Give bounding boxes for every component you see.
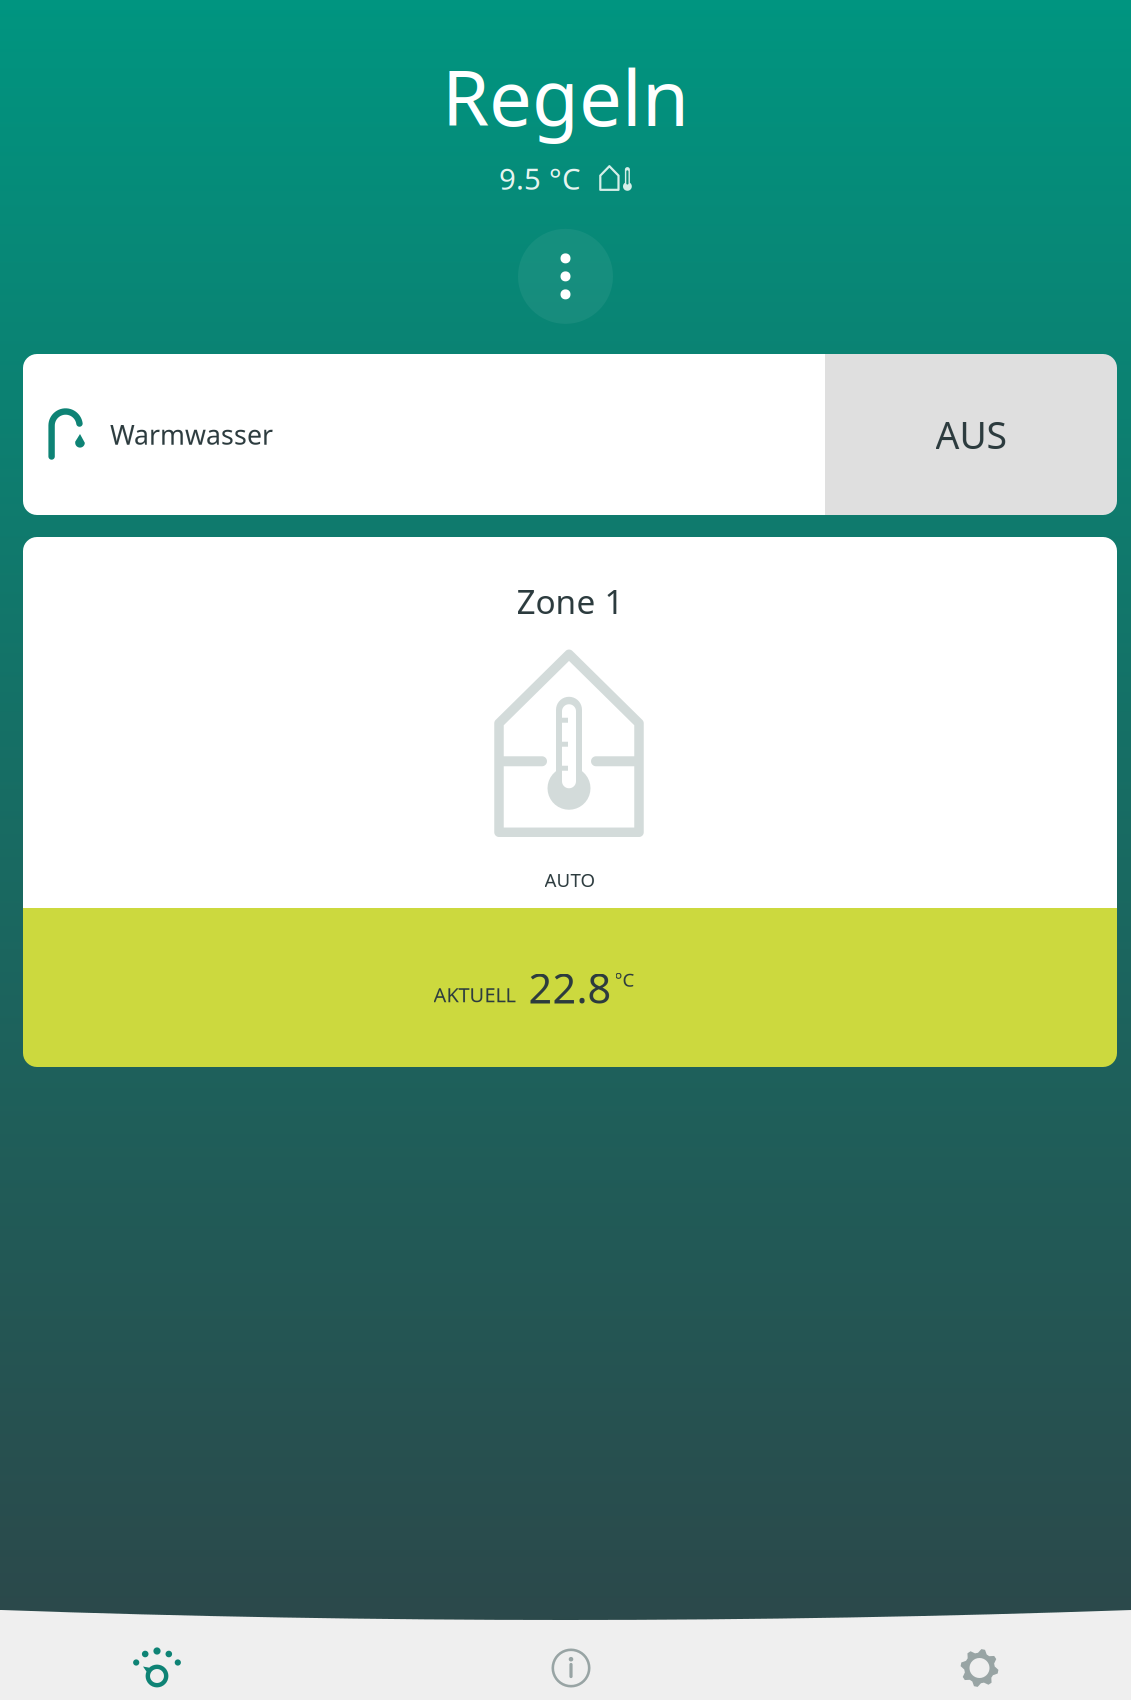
staticText: Regeln (442, 46, 689, 147)
staticText: Zone 1 (516, 579, 623, 623)
button[interactable]: More options (518, 229, 613, 324)
staticText: °C (614, 967, 634, 992)
staticText: AUTO (544, 867, 595, 892)
staticText: 9.5 °C (499, 159, 581, 198)
button[interactable]: Einstellungen (828, 1623, 1131, 1700)
button[interactable]: Warmwasser (23, 354, 1117, 515)
button[interactable]: Info (314, 1623, 828, 1700)
button[interactable]: Zone 1 (23, 537, 1117, 1067)
button[interactable]: Regeln (0, 1623, 314, 1700)
staticText: AUS (935, 410, 1006, 459)
staticText: Warmwasser (110, 417, 273, 452)
staticText: AKTUELL (433, 981, 515, 1008)
staticText: 22.8 (528, 960, 611, 1015)
